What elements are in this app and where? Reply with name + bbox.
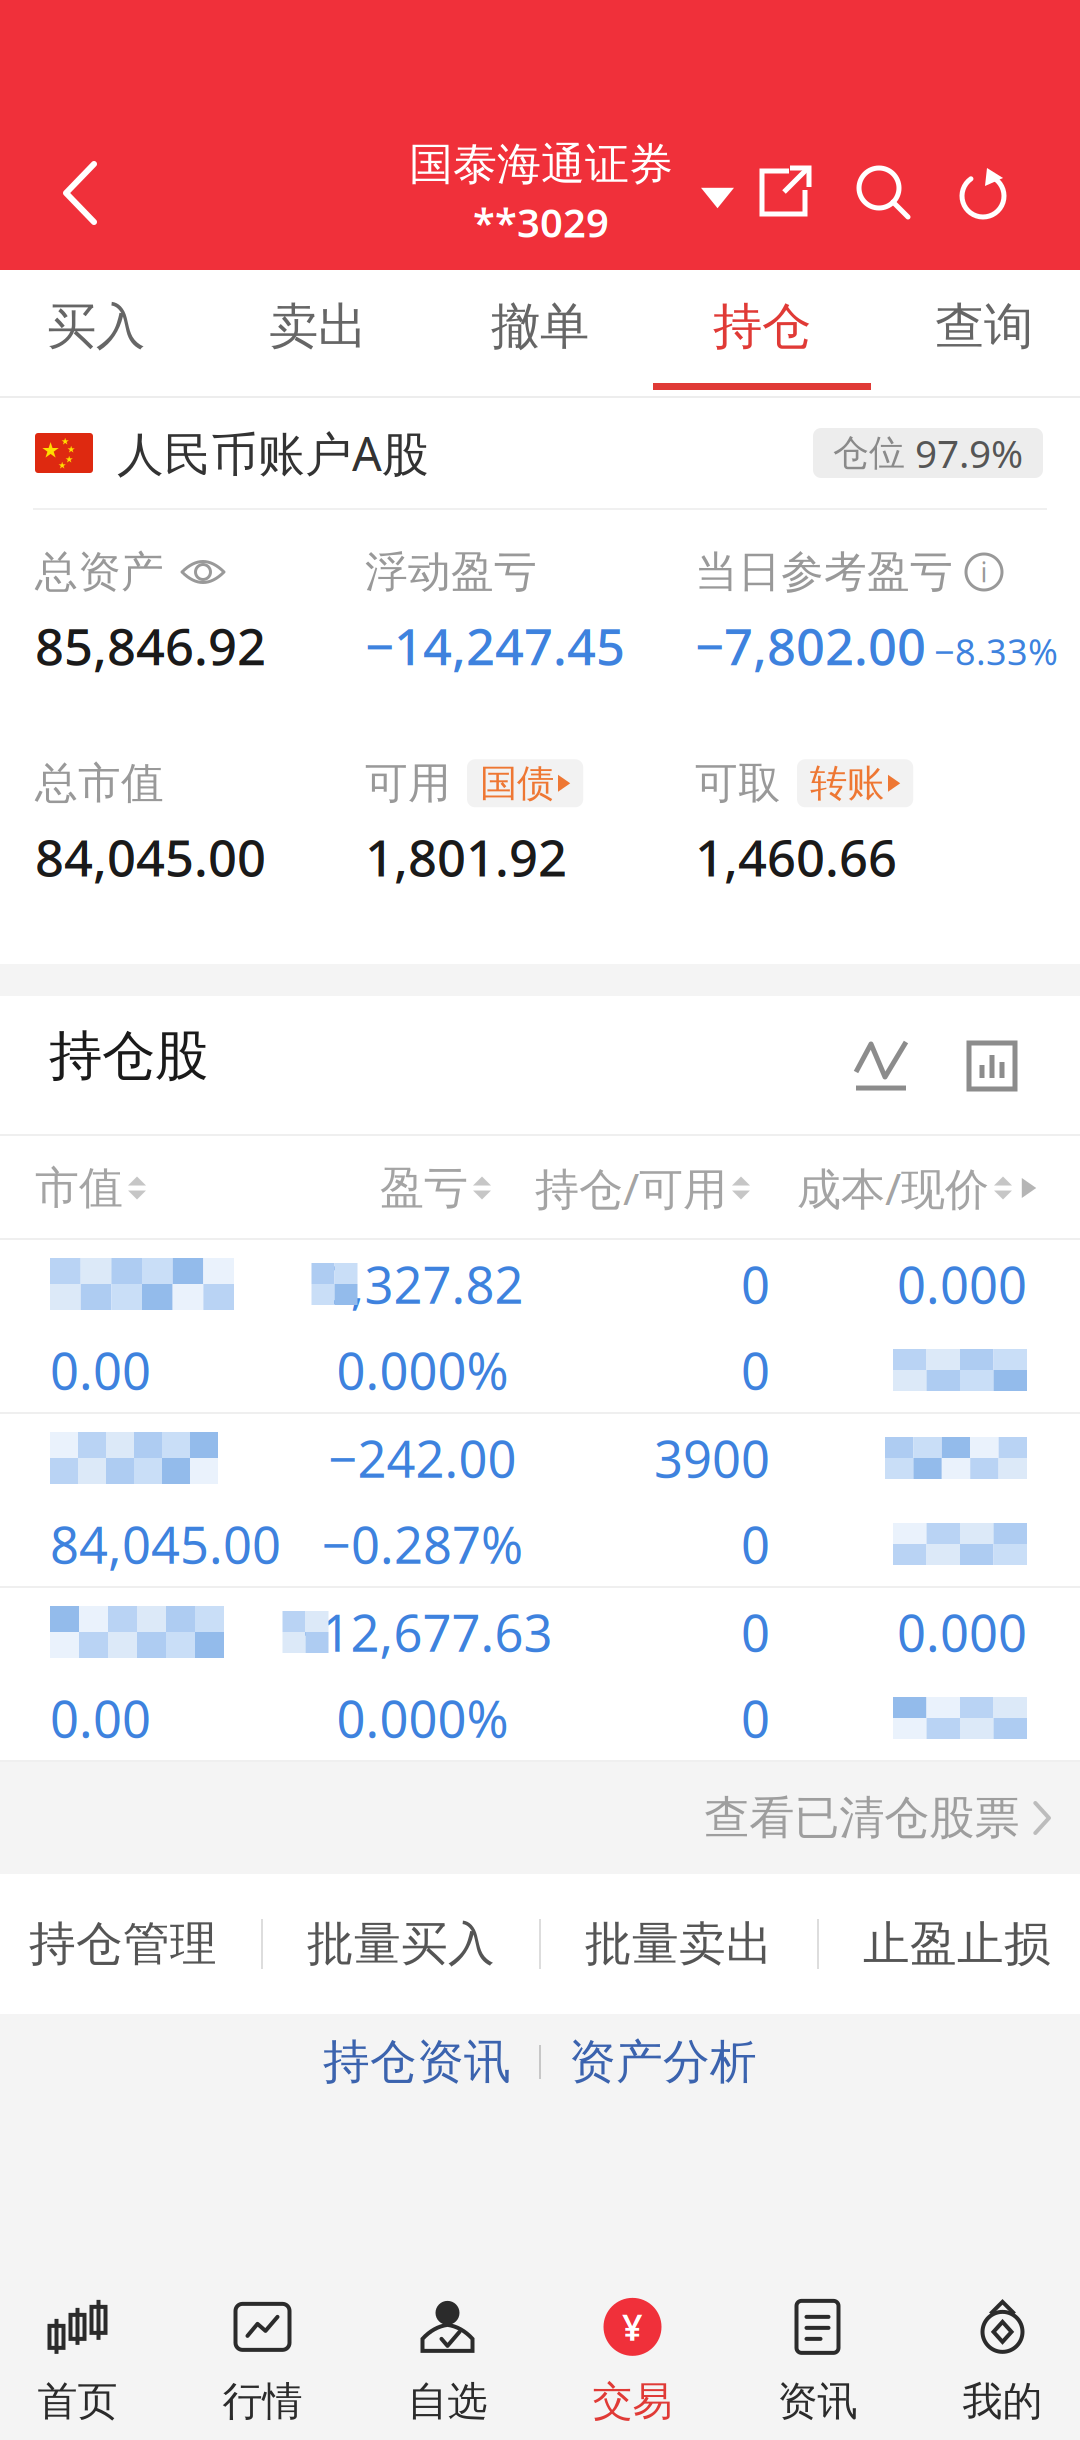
button[interactable]: 查看已清仓股票 [704, 1762, 1080, 1874]
staticText: 批量买入 [307, 1915, 495, 1973]
button[interactable]: −12,677.63 [0, 1588, 1080, 1760]
staticText: 持仓 [713, 296, 811, 357]
button[interactable]: 国泰海通证券 [409, 128, 734, 258]
staticText: 持仓资讯 [323, 2033, 511, 2091]
staticText: 1,801.92 [365, 823, 567, 891]
button[interactable]: 买入 [0, 270, 207, 398]
staticText: 仓位 [833, 431, 905, 475]
staticText: 85,846.92 [35, 612, 266, 679]
staticText: 可取 [695, 757, 781, 809]
button[interactable]: 持仓/可用 [535, 1136, 750, 1240]
staticText: 0.000% [336, 1684, 508, 1752]
staticText: 查看已清仓股票 [704, 1790, 1019, 1846]
button[interactable]: 首页 [0, 2240, 170, 2440]
staticText: 0.000% [336, 1336, 508, 1404]
button[interactable]: Search [833, 128, 933, 258]
staticText: 交易 [592, 2377, 672, 2426]
staticText: 国债 [480, 760, 554, 806]
staticText: 0,327.82 [321, 1250, 523, 1318]
staticText: ★ [67, 444, 75, 455]
staticText: ★ [58, 460, 66, 471]
staticText: 总资产 [35, 546, 164, 598]
staticText: 买入 [47, 296, 145, 357]
staticText: 0 [741, 1336, 770, 1404]
staticText: 可用 [365, 757, 451, 809]
staticText: 84,045.00 [35, 823, 266, 891]
staticText: −12,677.63 [292, 1598, 552, 1666]
button[interactable]: Refresh [933, 128, 1033, 258]
staticText: 97.9% [915, 427, 1023, 479]
button[interactable]: 自选 [355, 2240, 540, 2440]
staticText: 1,460.66 [695, 823, 897, 891]
staticText: 当日参考盈亏 [695, 546, 953, 598]
staticText: 持仓股 [49, 1023, 208, 1089]
button[interactable]: 持仓管理 [0, 1874, 261, 2014]
button[interactable]: 持仓资讯 [295, 2014, 539, 2110]
staticText: 0 [741, 1684, 770, 1752]
staticText: 人民币账户A股 [117, 422, 429, 484]
staticText: 止盈止损 [863, 1915, 1051, 1973]
staticText: 批量卖出 [585, 1915, 773, 1973]
button[interactable]: 转账 [797, 759, 913, 807]
button[interactable]: 仓位 [813, 428, 1043, 478]
staticText: 持仓/可用 [535, 1159, 727, 1217]
staticText: ★ [65, 454, 73, 465]
staticText: −7,802.00 [695, 612, 926, 679]
staticText: 市值 [35, 1161, 123, 1215]
staticText: 资讯 [777, 2377, 857, 2426]
button[interactable]: 批量卖出 [541, 1874, 817, 2014]
button[interactable]: 我的 [910, 2240, 1080, 2440]
button[interactable]: 资讯 [725, 2240, 910, 2440]
button[interactable]: 行情 [170, 2240, 355, 2440]
staticText: 0 [741, 1510, 770, 1578]
staticText: 3900 [654, 1424, 770, 1492]
staticText: 0.00 [50, 1684, 151, 1752]
staticText: 浮动盈亏 [365, 546, 537, 598]
staticText: ★ [61, 436, 69, 447]
staticText: −8.33% [934, 627, 1058, 675]
staticText: 0 [741, 1598, 770, 1666]
staticText: 自选 [407, 2377, 487, 2426]
staticText: 0.00 [50, 1336, 151, 1404]
button[interactable]: 卖出 [207, 270, 429, 398]
staticText: ★ [41, 438, 60, 462]
button[interactable]: 盈亏 [380, 1136, 491, 1240]
staticText: 0.000 [897, 1250, 1027, 1318]
button[interactable]: 国债 [467, 759, 583, 807]
button[interactable]: Bar chart [937, 1001, 1047, 1131]
button[interactable]: 持仓 [651, 270, 873, 398]
button[interactable]: ¥ [540, 2240, 725, 2440]
staticText: 盈亏 [380, 1161, 468, 1215]
button[interactable]: Back [25, 128, 135, 258]
staticText: 总市值 [35, 757, 164, 809]
staticText: ¥ [622, 2303, 643, 2351]
staticText: **3029 [473, 195, 609, 249]
staticText: 84,045.00 [50, 1510, 281, 1578]
button[interactable]: 0,327.82 [0, 1240, 1080, 1412]
button[interactable]: 市值 [35, 1136, 146, 1240]
staticText: 0 [741, 1250, 770, 1318]
button[interactable]: Share [737, 128, 833, 258]
staticText: 资产分析 [569, 2033, 757, 2091]
staticText: 0.000 [897, 1598, 1027, 1666]
button[interactable]: 批量买入 [263, 1874, 539, 2014]
button[interactable]: More columns [1015, 1158, 1043, 1218]
staticText: 行情 [222, 2377, 302, 2426]
staticText: 撤单 [491, 296, 589, 357]
staticText: −14,247.45 [365, 612, 625, 679]
staticText: 查询 [935, 296, 1033, 357]
staticText: 我的 [962, 2377, 1042, 2426]
button[interactable]: 资产分析 [541, 2014, 785, 2110]
button[interactable]: 成本/现价 [797, 1136, 1012, 1240]
staticText: 首页 [37, 2377, 117, 2426]
button[interactable]: −242.00 [0, 1414, 1080, 1586]
staticText: 转账 [810, 760, 884, 806]
staticText: 卖出 [269, 296, 367, 357]
staticText: −0.287% [322, 1510, 523, 1578]
staticText: −242.00 [328, 1424, 516, 1492]
button[interactable]: 撤单 [429, 270, 651, 398]
button[interactable]: Line chart [825, 1001, 937, 1131]
button[interactable]: 查询 [873, 270, 1080, 398]
button[interactable]: 止盈止损 [819, 1874, 1080, 2014]
staticText: 国泰海通证券 [409, 137, 673, 191]
